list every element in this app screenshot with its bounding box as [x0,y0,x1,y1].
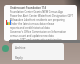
button[interactable]: Reply [15,55,23,60]
staticText: Undercount Foundation 114 [10,6,47,10]
staticText: Milwaukee Lakefront residents are prepar… [10,18,65,22]
button[interactable]: Archive [15,45,26,51]
staticText: Under the latest census data release [10,22,55,26]
staticText: Archive [15,46,26,50]
button[interactable]: Undercount Foundation 114 [4,5,77,41]
staticText: reports and credit historical data [10,26,50,30]
staticText: census count and updates new data [10,34,54,38]
staticText: sources GIFT and community participation [10,38,62,41]
staticText: Powerline Alert Center Waterfront Design… [10,14,73,18]
staticText: Governor's Office Commission on Informat… [10,30,67,34]
staticText: Reply [15,56,23,60]
button[interactable]: Profile [2,45,9,52]
staticText: Foundation Center Grants NEW Census App [10,10,64,14]
